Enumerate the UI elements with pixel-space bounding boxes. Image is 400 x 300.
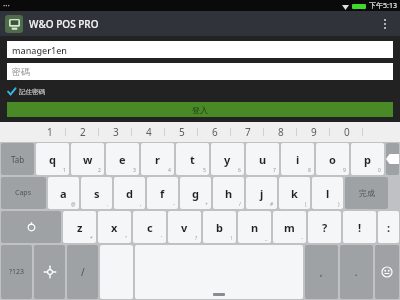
- staticText: 9: [343, 167, 346, 174]
- staticText: !: [358, 220, 362, 235]
- button[interactable]: l: [312, 177, 343, 209]
- button[interactable]: t: [176, 143, 209, 175]
- staticText: z: [77, 220, 83, 235]
- button[interactable]: 密碼: [7, 63, 393, 80]
- staticText: *: [90, 235, 93, 242]
- button[interactable]: 4: [132, 122, 165, 142]
- button[interactable]: a: [48, 177, 79, 209]
- button[interactable]: w: [71, 143, 104, 175]
- button[interactable]: o: [316, 143, 349, 175]
- staticText: h: [225, 186, 233, 201]
- button[interactable]: 9: [297, 122, 330, 142]
- staticText: k: [291, 186, 298, 201]
- button[interactable]: manager1en: [7, 41, 393, 58]
- staticText: ": [125, 235, 128, 242]
- button[interactable]: b: [203, 211, 236, 243]
- staticText: :: [387, 220, 391, 235]
- staticText: ): [338, 201, 340, 208]
- button[interactable]: v: [168, 211, 201, 243]
- button[interactable]: q: [36, 143, 69, 175]
- staticText: w: [83, 152, 93, 167]
- staticText: y: [224, 152, 231, 167]
- staticText: #: [270, 201, 274, 208]
- button[interactable]: d: [114, 177, 145, 209]
- button[interactable]: 0: [330, 122, 363, 142]
- staticText: 1: [47, 125, 53, 139]
- button[interactable]: Emoji: [375, 245, 399, 299]
- staticText: .: [107, 201, 109, 208]
- staticText: c: [147, 220, 153, 235]
- button[interactable]: 5: [165, 122, 198, 142]
- staticText: t: [190, 152, 195, 167]
- button[interactable]: 7: [231, 122, 264, 142]
- button[interactable]: 完成: [345, 177, 388, 209]
- button[interactable]: g: [180, 177, 211, 209]
- button[interactable]: u: [246, 143, 279, 175]
- button[interactable]: e: [106, 143, 139, 175]
- staticText: 9: [311, 125, 317, 139]
- staticText: Caps: [15, 188, 32, 198]
- staticText: (: [305, 201, 307, 208]
- button[interactable]: 記住密碼: [7, 85, 45, 98]
- staticText: v: [181, 220, 188, 235]
- staticText: 8: [308, 167, 311, 174]
- button[interactable]: Backspace: [386, 143, 399, 175]
- staticText: 6: [212, 125, 218, 139]
- button[interactable]: !: [343, 211, 376, 243]
- button[interactable]: k: [279, 177, 310, 209]
- button[interactable]: n: [238, 211, 271, 243]
- button[interactable]: y: [211, 143, 244, 175]
- button[interactable]: ?123: [1, 245, 32, 299]
- button[interactable]: Caps: [1, 177, 46, 209]
- button[interactable]: 1: [33, 122, 66, 142]
- button[interactable]: Space: [135, 245, 303, 299]
- staticText: s: [94, 186, 100, 201]
- button[interactable]: Shift: [1, 211, 61, 243]
- button[interactable]: i: [281, 143, 314, 175]
- staticText: 記住密碼: [19, 88, 45, 96]
- staticText: ,: [140, 201, 142, 208]
- button[interactable]: Tab: [1, 143, 34, 175]
- button[interactable]: Settings: [34, 245, 65, 299]
- button[interactable]: p: [351, 143, 384, 175]
- staticText: ': [161, 235, 163, 242]
- staticText: 0: [344, 125, 350, 139]
- button[interactable]: 3: [99, 122, 132, 142]
- staticText: .: [355, 267, 358, 278]
- staticText: W&O POS PRO: [29, 17, 99, 31]
- button[interactable]: c: [133, 211, 166, 243]
- button[interactable]: s: [81, 177, 112, 209]
- staticText: @: [71, 201, 76, 208]
- staticText: r: [155, 152, 160, 167]
- button[interactable]: h: [213, 177, 244, 209]
- staticText: m: [284, 220, 295, 235]
- button[interactable]: f: [147, 177, 178, 209]
- staticText: o: [329, 152, 336, 167]
- staticText: q: [49, 152, 56, 167]
- staticText: -: [301, 235, 303, 242]
- staticText: ,: [320, 267, 323, 278]
- button[interactable]: 8: [264, 122, 297, 142]
- button[interactable]: /: [67, 245, 98, 299]
- staticText: 6: [238, 167, 241, 174]
- button[interactable]: 2: [66, 122, 99, 142]
- button[interactable]: m: [273, 211, 306, 243]
- button[interactable]: j: [246, 177, 277, 209]
- staticText: 3: [133, 167, 136, 174]
- button[interactable]: 登入: [7, 102, 393, 117]
- staticText: -: [173, 201, 175, 208]
- button[interactable]: x: [98, 211, 131, 243]
- staticText: 5: [179, 125, 185, 139]
- button[interactable]: r: [141, 143, 174, 175]
- button[interactable]: 6: [198, 122, 231, 142]
- staticText: p: [364, 152, 371, 167]
- button[interactable]: :: [378, 211, 399, 243]
- button[interactable]: ?: [308, 211, 341, 243]
- button[interactable]: z: [63, 211, 96, 243]
- staticText: l: [326, 186, 330, 201]
- button[interactable]: More options: [374, 11, 396, 36]
- staticText: 完成: [359, 188, 375, 198]
